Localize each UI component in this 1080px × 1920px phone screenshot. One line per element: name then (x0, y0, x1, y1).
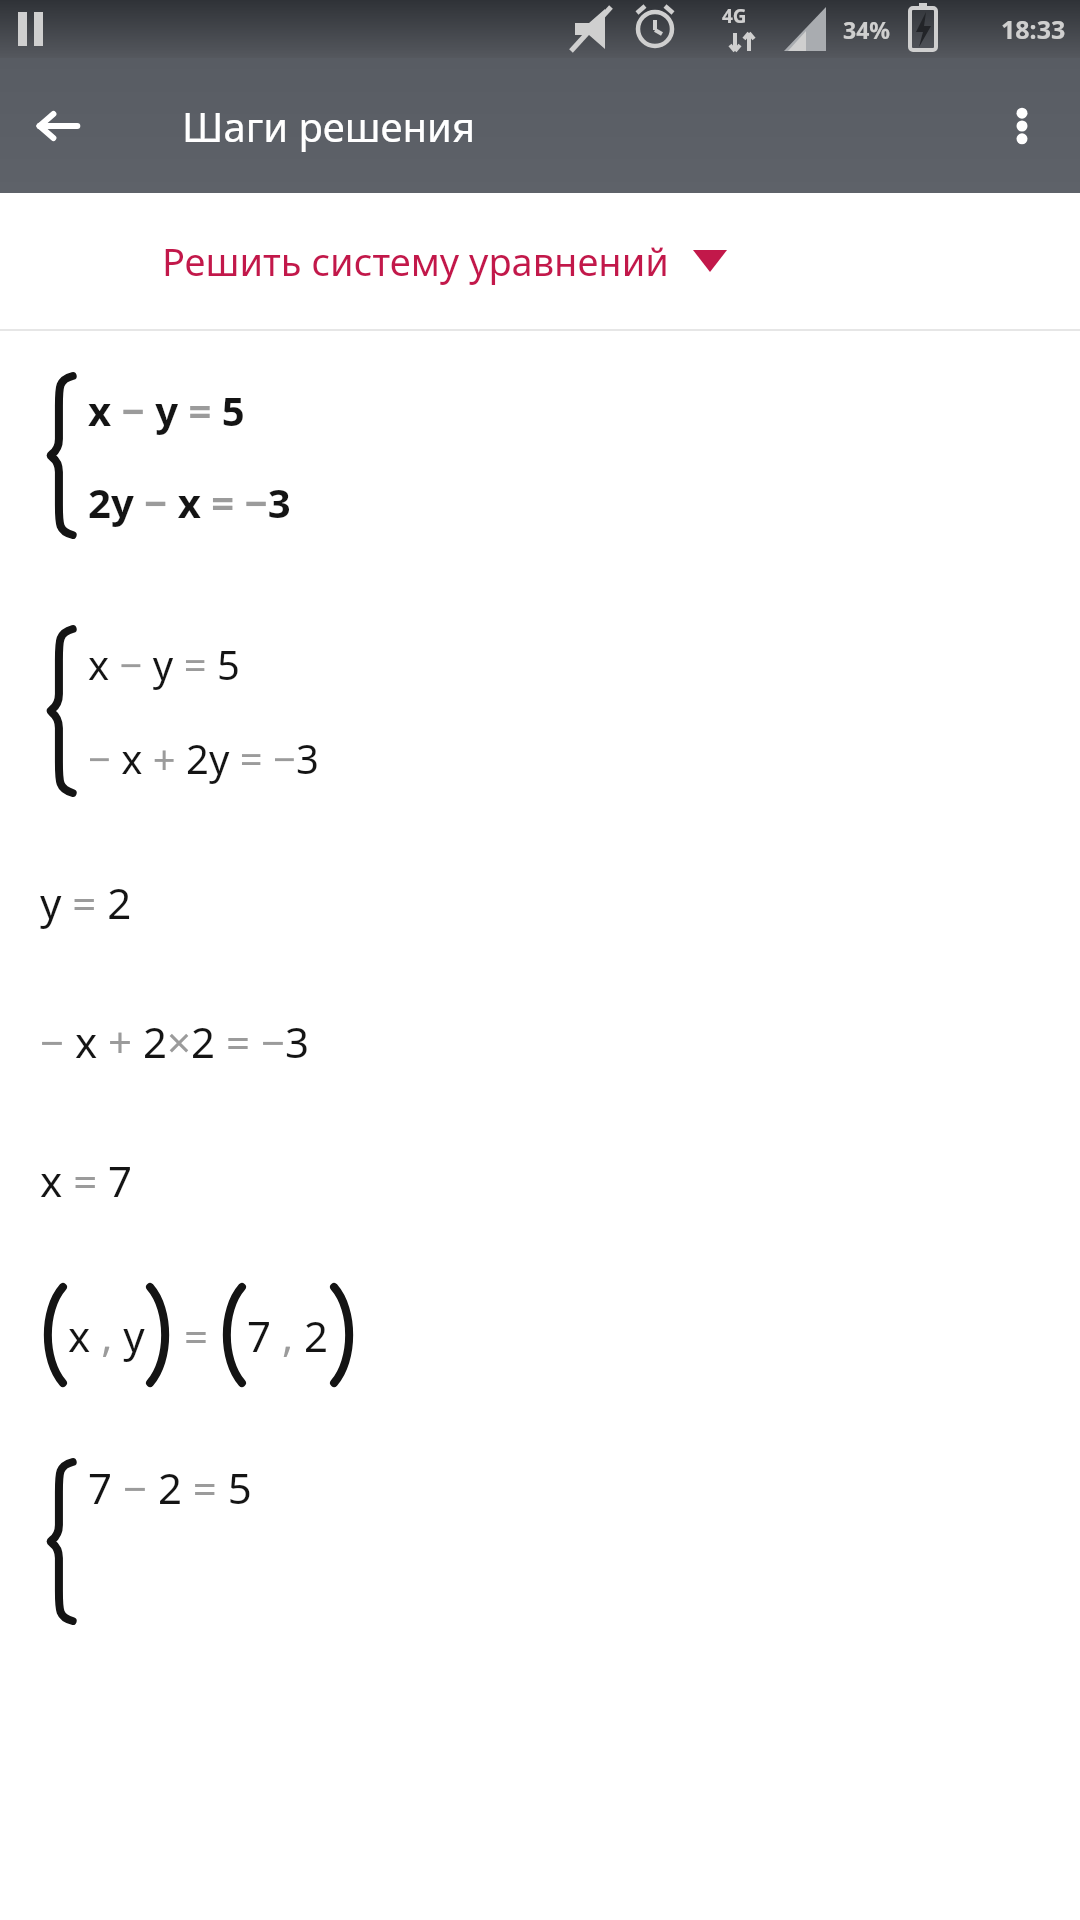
button[interactable]: Решить систему уравнений (0, 193, 1080, 329)
staticText: 4G (722, 3, 747, 29)
staticText: 34% (843, 14, 891, 45)
staticText: − x + 2×2 = −3 (40, 1013, 310, 1070)
staticText: Решить систему уравнений (162, 235, 669, 287)
staticText: 7 − 2 = 5 (88, 1459, 252, 1516)
staticText: x − y = 5 (88, 383, 245, 437)
staticText: y = 2 (40, 874, 132, 931)
button[interactable]: Back (18, 86, 98, 166)
staticText: = (173, 1307, 219, 1364)
staticText: − x + 2y = −3 (88, 731, 319, 785)
staticText: 18:33 (1001, 12, 1066, 46)
staticText: x , y (68, 1307, 145, 1364)
staticText: 2y − x = −3 (88, 475, 291, 529)
staticText: 7 , 2 (247, 1307, 329, 1364)
button[interactable]: More options (982, 86, 1062, 166)
staticText: Шаги решения (182, 99, 476, 153)
staticText: x = 7 (40, 1152, 133, 1209)
staticText: x − y = 5 (88, 637, 240, 691)
